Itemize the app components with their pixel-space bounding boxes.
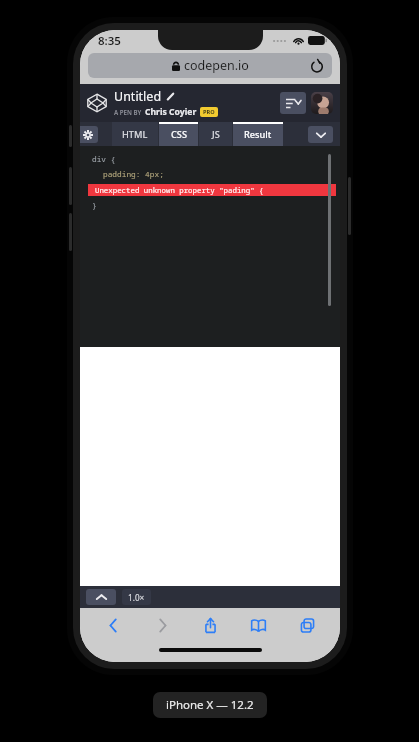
button[interactable]: iPhone X — 12.2: [153, 692, 267, 718]
button[interactable]: Result: [233, 122, 283, 146]
button[interactable]: codepen.io: [88, 53, 332, 78]
button[interactable]: Settings: [80, 126, 98, 143]
staticText: }: [92, 200, 97, 211]
staticText: A PEN BY: [114, 108, 142, 116]
button[interactable]: Menu: [280, 92, 306, 114]
staticText: Result: [244, 128, 272, 141]
button[interactable]: Forward: [147, 610, 177, 640]
button[interactable]: Tabs: [292, 610, 322, 640]
staticText: div {: [92, 154, 116, 165]
button[interactable]: More views: [308, 126, 333, 143]
staticText: HTML: [122, 128, 148, 141]
button[interactable]: Profile: [311, 92, 333, 114]
staticText: codepen.io: [184, 57, 249, 74]
staticText: Chris Coyier: [145, 106, 197, 118]
staticText: CSS: [171, 128, 187, 141]
staticText: Untitled: [114, 88, 162, 105]
button[interactable]: Collapse editor: [86, 589, 116, 605]
staticText: 8:35: [98, 33, 121, 49]
staticText: PRO: [203, 108, 215, 116]
button[interactable]: Back: [98, 610, 128, 640]
button[interactable]: 1.0×: [122, 589, 151, 605]
staticText: padding: 4px;: [103, 169, 164, 180]
staticText: Unexpected unknown property "pading" {: [95, 185, 264, 195]
button[interactable]: JS: [199, 122, 232, 146]
button[interactable]: Bookmarks: [243, 610, 273, 640]
button[interactable]: HTML: [112, 122, 158, 146]
button[interactable]: Reload: [309, 58, 325, 74]
staticText: 1.0×: [128, 592, 145, 603]
staticText: JS: [212, 128, 220, 141]
button[interactable]: CSS: [159, 122, 198, 146]
button[interactable]: Share: [195, 610, 225, 640]
staticText: iPhone X — 12.2: [166, 697, 254, 713]
